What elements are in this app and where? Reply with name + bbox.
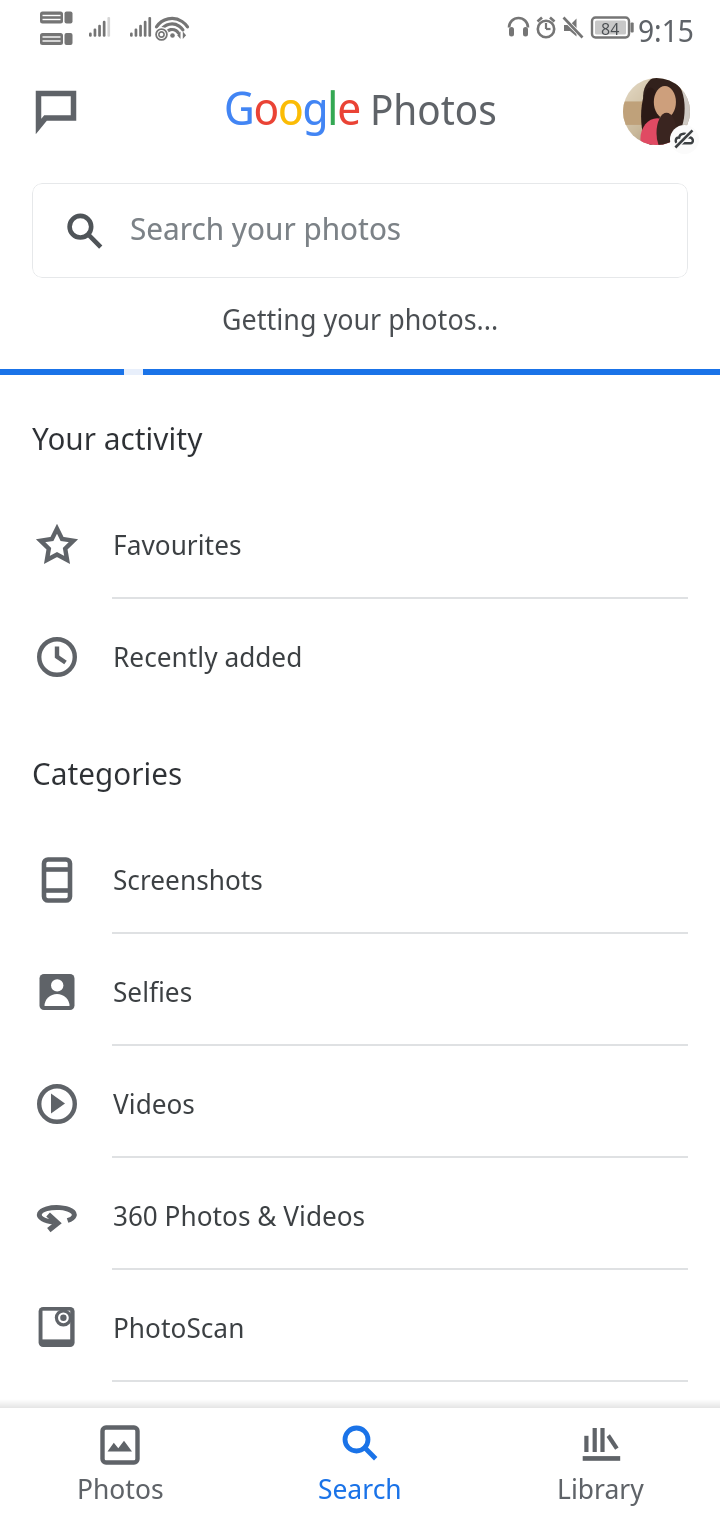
staticText: Library	[557, 1469, 644, 1507]
button[interactable]: Account profile	[623, 78, 690, 145]
button[interactable]: Conversations	[20, 75, 92, 147]
button[interactable]: Library	[480, 1408, 720, 1520]
button[interactable]: Photos	[0, 1408, 240, 1520]
staticText: Getting your photos...	[222, 300, 499, 339]
button[interactable]: Search your photos	[32, 183, 688, 278]
staticText: Recently added	[113, 637, 303, 675]
button[interactable]: PhotoScan	[0, 1272, 720, 1384]
staticText: Your activity	[32, 416, 203, 459]
staticText: Categories	[32, 751, 183, 794]
button[interactable]: Search	[240, 1408, 480, 1520]
staticText: Photos	[77, 1469, 164, 1507]
button[interactable]: Selfies	[0, 936, 720, 1048]
staticText: 84	[601, 17, 620, 40]
staticText: PhotoScan	[113, 1308, 245, 1346]
button[interactable]: 360 Photos & Videos	[0, 1160, 720, 1272]
staticText: 9:15	[638, 10, 694, 51]
staticText: Screenshots	[113, 860, 263, 898]
staticText: Favourites	[113, 525, 242, 563]
button[interactable]: Videos	[0, 1048, 720, 1160]
button[interactable]: Screenshots	[0, 824, 720, 936]
button[interactable]: Favourites	[0, 489, 720, 601]
button[interactable]: Recently added	[0, 601, 720, 713]
staticText: Search your photos	[130, 206, 402, 249]
staticText: 360 Photos & Videos	[113, 1196, 366, 1234]
staticText: Google Photos	[224, 77, 497, 138]
staticText: Videos	[113, 1084, 195, 1122]
staticText: Search	[318, 1469, 402, 1507]
staticText: Selfies	[113, 972, 193, 1010]
